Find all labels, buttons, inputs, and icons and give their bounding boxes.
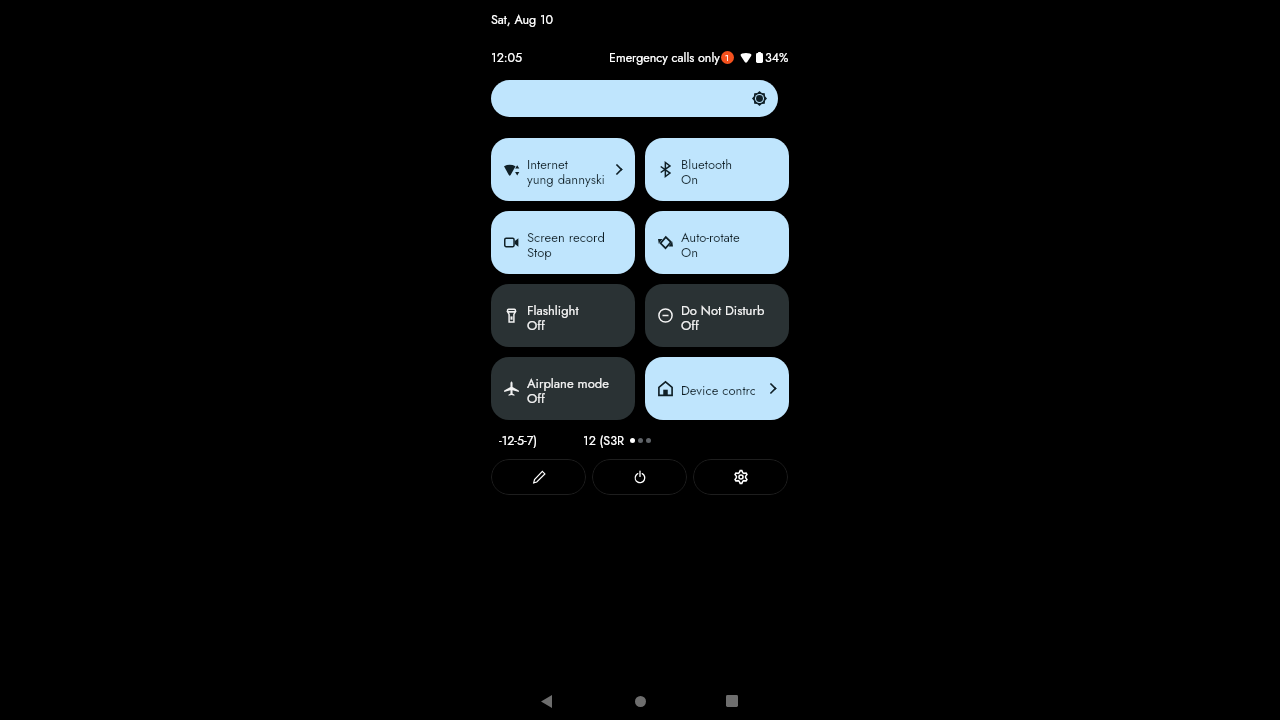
staticText: 12 (S3RC xyxy=(583,432,624,448)
staticText: Sat, Aug 10 xyxy=(491,11,554,29)
button[interactable]: Brightness xyxy=(491,80,778,117)
staticText: Flashlight Off xyxy=(527,301,624,335)
button[interactable]: Bluetooth On xyxy=(645,138,789,201)
staticText: 34% xyxy=(765,49,789,65)
button[interactable]: Back xyxy=(500,681,593,720)
staticText: 12:05 xyxy=(491,49,523,65)
staticText: Screen record Stop xyxy=(527,228,624,262)
staticText: Auto-rotate On xyxy=(681,228,778,262)
button[interactable]: Flashlight Off xyxy=(491,284,635,347)
button[interactable]: Auto-rotate On xyxy=(645,211,789,274)
staticText: 1 xyxy=(725,51,730,64)
staticText: -12-5-7) xyxy=(499,432,538,448)
button[interactable]: Settings xyxy=(693,459,788,495)
staticText: Do Not Disturb Off xyxy=(681,301,778,335)
button[interactable]: Airplane mode Off xyxy=(491,357,635,420)
button[interactable]: Internet yung dannyski xyxy=(491,138,635,201)
button[interactable]: Do Not Disturb Off xyxy=(645,284,789,347)
button[interactable]: Power xyxy=(592,459,687,495)
staticText: Airplane mode Off xyxy=(527,374,624,408)
staticText: Emergency calls only xyxy=(609,49,720,65)
button[interactable]: Edit xyxy=(491,459,586,495)
staticText: Internet yung dannyski xyxy=(527,155,612,189)
staticText: Device controls xyxy=(681,381,755,398)
button[interactable]: Recents xyxy=(685,681,778,720)
button[interactable]: Home xyxy=(594,681,687,720)
button[interactable]: Screen record Stop xyxy=(491,211,635,274)
staticText: Bluetooth On xyxy=(681,155,778,189)
button[interactable]: Device controls xyxy=(645,357,789,420)
